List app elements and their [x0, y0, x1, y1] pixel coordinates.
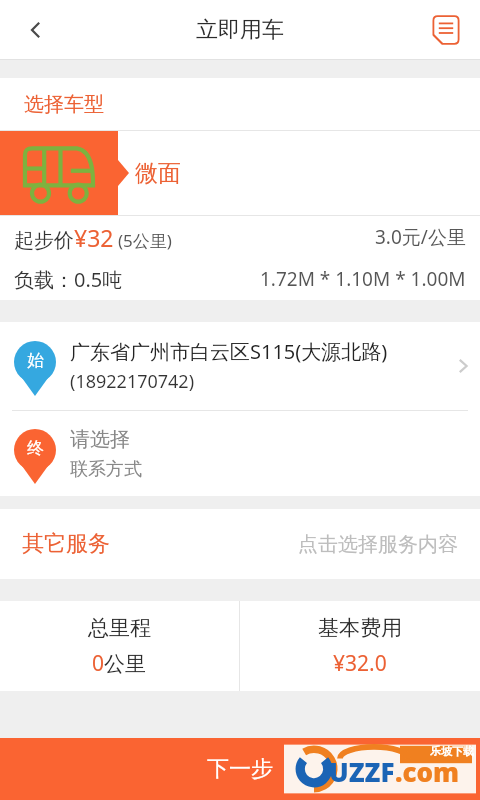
staticText: 总里程: [88, 615, 151, 641]
staticText: 下一步: [207, 755, 273, 783]
button[interactable]: 始: [0, 322, 480, 410]
staticText: 点击选择服务内容: [298, 532, 458, 557]
staticText: 0公里: [92, 649, 147, 678]
staticText: 选择车型: [24, 92, 104, 117]
staticText: 广东省广州市白云区S115(大源北路): [70, 338, 388, 365]
staticText: 基本费用: [318, 615, 402, 641]
staticText: 始: [27, 350, 44, 371]
staticText: 其它服务: [22, 530, 110, 558]
staticText: 联系方式: [70, 458, 142, 481]
staticText: 终: [27, 438, 44, 459]
staticText: 乐坡下载: [430, 744, 474, 758]
staticText: 起步价¥32 (5公里): [14, 222, 172, 253]
staticText: ¥32.0: [333, 649, 387, 678]
button[interactable]: 其它服务: [0, 509, 480, 579]
staticText: 3.0元/公里: [375, 224, 466, 250]
staticText: 立即用车: [196, 16, 284, 44]
staticText: UZZF: [329, 754, 395, 789]
staticText: (18922170742): [70, 369, 195, 394]
staticText: 请选择: [70, 427, 130, 452]
button[interactable]: 下一步: [0, 738, 480, 800]
staticText: 1.72M * 1.10M * 1.00M: [260, 266, 466, 292]
button[interactable]: 微面: [0, 131, 480, 215]
button[interactable]: 选择车型: [0, 78, 480, 130]
button[interactable]: Order list: [422, 6, 470, 54]
button[interactable]: Back: [12, 6, 60, 54]
staticText: .com: [395, 754, 460, 789]
staticText: 微面: [135, 159, 181, 188]
button[interactable]: 终: [0, 411, 480, 496]
staticText: 负载：0.5吨: [14, 266, 123, 293]
